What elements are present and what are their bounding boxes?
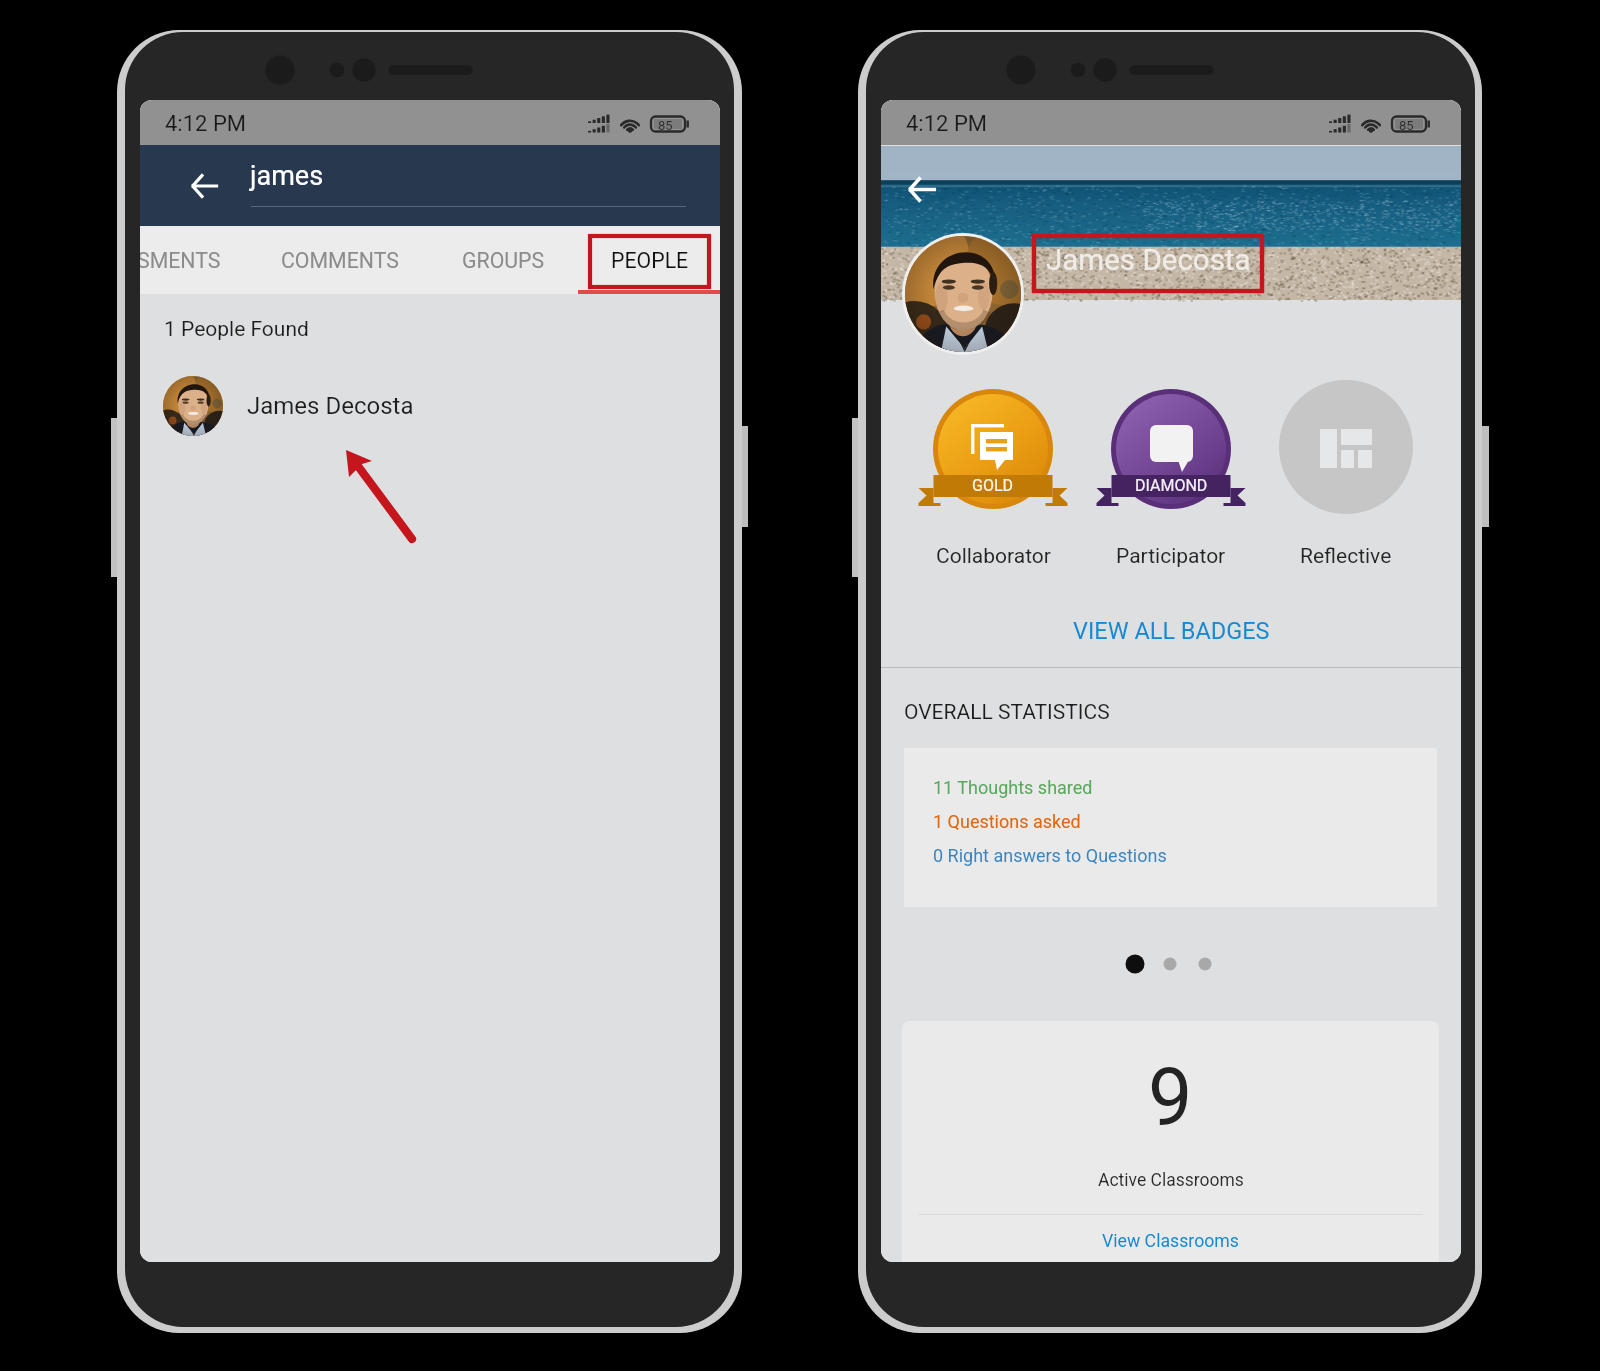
staticText: 11 Thoughts shared (933, 777, 1093, 798)
staticText: James Decosta (247, 392, 414, 420)
staticText: 0 Right answers to Questions (933, 845, 1167, 866)
staticText: GROUPS (462, 248, 545, 273)
button[interactable] (570, 226, 720, 294)
staticText: James Decosta (1046, 243, 1251, 278)
button[interactable]: 11 Thoughts shared (904, 748, 1437, 907)
staticText: OVERALL STATISTICS (904, 700, 1110, 725)
button[interactable]: Reflective badge, locked (1276, 382, 1416, 572)
staticText: Collaborator (936, 544, 1051, 569)
staticText: 85 (1399, 118, 1414, 133)
button[interactable]: VIEW ALL BADGES (881, 609, 1461, 653)
button[interactable]: Participator badge, Diamond (1101, 382, 1241, 572)
button[interactable]: Back (179, 161, 229, 211)
staticText: Active Classrooms (1098, 1170, 1244, 1191)
staticText: GOLD (972, 476, 1014, 495)
staticText: Participator (1116, 544, 1226, 569)
button[interactable] (420, 226, 570, 294)
button[interactable]: Back (897, 164, 947, 214)
staticText: SMENTS (140, 248, 221, 273)
staticText: 4:12 PM (906, 111, 987, 137)
staticText: DIAMOND (1135, 476, 1208, 495)
staticText: 9 (1148, 1052, 1193, 1145)
staticText: VIEW ALL BADGES (1073, 617, 1270, 645)
button[interactable] (260, 226, 420, 294)
staticText: 1 Questions asked (933, 811, 1081, 832)
button[interactable] (140, 226, 260, 294)
button[interactable]: James Decosta (140, 366, 720, 446)
staticText: COMMENTS (281, 248, 399, 273)
staticText: Reflective (1300, 544, 1392, 569)
staticText: PEOPLE (611, 248, 689, 273)
button[interactable]: Collaborator badge, Gold (923, 382, 1063, 572)
staticText: View Classrooms (1102, 1231, 1239, 1252)
staticText: 4:12 PM (165, 111, 246, 137)
staticText: 85 (658, 118, 673, 133)
staticText: 1 People Found (164, 317, 309, 342)
staticText: james (250, 160, 324, 192)
button[interactable]: View Classrooms (902, 1221, 1439, 1262)
